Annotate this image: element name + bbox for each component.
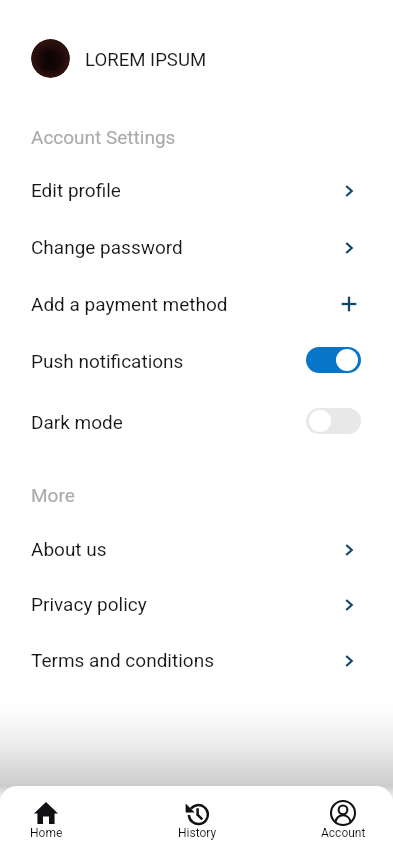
staticText: Dark mode	[31, 411, 123, 433]
other: Open	[337, 649, 361, 673]
button[interactable]: Home	[11, 800, 81, 840]
button[interactable]: Profile photo	[31, 39, 70, 78]
button[interactable]: Toggle	[306, 347, 361, 373]
other: Add	[337, 292, 361, 316]
other: Open	[337, 236, 361, 260]
button[interactable]: Change password	[0, 224, 393, 271]
button[interactable]: Add a payment method	[0, 281, 393, 328]
button[interactable]: Push notifications	[0, 338, 393, 385]
staticText: Privacy policy	[31, 593, 147, 615]
staticText: More	[31, 484, 75, 506]
button[interactable]: Privacy policy	[0, 581, 393, 628]
staticText: Add a payment method	[31, 293, 228, 315]
other: Open	[337, 538, 361, 562]
staticText: About us	[31, 538, 107, 560]
staticText: LOREM IPSUM	[85, 49, 207, 71]
button[interactable]: About us	[0, 526, 393, 573]
staticText: Terms and conditions	[31, 649, 214, 671]
other: Open	[337, 179, 361, 203]
other: Open	[337, 593, 361, 617]
button[interactable]: Terms and conditions	[0, 637, 393, 684]
staticText: Home	[30, 826, 63, 840]
staticText: Push notifications	[31, 350, 184, 372]
button[interactable]: History	[162, 800, 232, 840]
button[interactable]: Edit profile	[0, 167, 393, 214]
staticText: Change password	[31, 236, 183, 258]
button[interactable]: Account	[308, 800, 378, 840]
button[interactable]: Dark mode	[0, 399, 393, 446]
staticText: Edit profile	[31, 179, 121, 201]
staticText: History	[178, 826, 217, 840]
staticText: Account Settings	[31, 126, 176, 148]
button[interactable]: Toggle	[306, 408, 361, 434]
staticText: Account	[321, 826, 366, 840]
